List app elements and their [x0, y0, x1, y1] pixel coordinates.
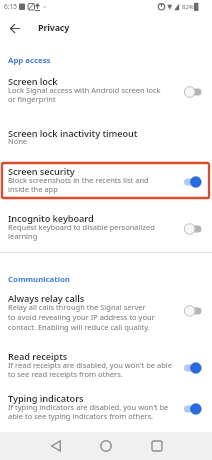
button[interactable]	[146, 435, 168, 457]
staticText: learning	[8, 231, 38, 241]
staticText: 82%	[182, 3, 194, 11]
staticText: Screen security	[8, 165, 75, 178]
button[interactable]: Always relay calls	[0, 289, 212, 337]
staticText: to see read receipts from others.	[8, 369, 123, 379]
button[interactable]: Screen security	[0, 162, 212, 198]
staticText: Typing indicators	[8, 392, 84, 405]
staticText: to avoid revealing your IP address to yo…	[8, 312, 155, 322]
staticText: Privacy	[38, 21, 70, 33]
button[interactable]: Typing indicators	[0, 389, 212, 425]
staticText: Read receipts	[8, 350, 68, 363]
staticText: Communication	[8, 274, 70, 285]
button[interactable]: Screen lock	[0, 72, 212, 108]
staticText: contact. Enabling will reduce call quali…	[8, 322, 150, 332]
staticText: inside the app	[8, 184, 58, 194]
staticText: Screen lock	[8, 75, 58, 88]
staticText: App access	[8, 55, 51, 66]
staticText: Incognito keyboard	[8, 212, 94, 225]
button[interactable]	[8, 22, 22, 36]
staticText: Relay all calls through the Signal serve…	[8, 302, 146, 312]
button[interactable]: Incognito keyboard	[0, 209, 212, 245]
staticText: Block screenshots in the recents list an…	[8, 175, 149, 185]
button[interactable]: Screen lock inactivity timeout	[0, 124, 212, 152]
staticText: 6:15	[4, 2, 17, 11]
button[interactable]	[45, 435, 67, 457]
staticText: If read receipts are disabled, you won't…	[8, 360, 172, 370]
staticText: None	[8, 136, 28, 146]
staticText: Request keyboard to disable personalized	[8, 222, 155, 232]
staticText: Screen lock inactivity timeout	[8, 127, 138, 140]
staticText: Lock Signal access with Android screen l…	[8, 85, 161, 95]
staticText: If typing indicators are disabled, you w…	[8, 402, 169, 412]
button[interactable]	[95, 435, 117, 457]
staticText: Always relay calls	[8, 292, 85, 305]
staticText: or fingerprint	[8, 94, 56, 104]
button[interactable]: Read receipts	[0, 347, 212, 383]
staticText: able to see typing indicators from other…	[8, 411, 154, 421]
